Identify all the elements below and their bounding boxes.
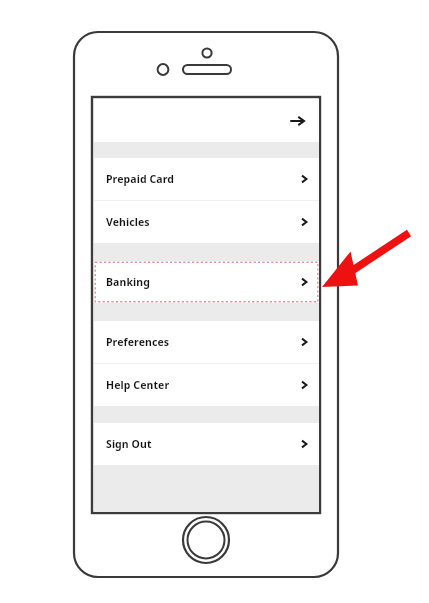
- button[interactable]: Vehicles: [94, 201, 319, 243]
- button[interactable]: Sign Out: [94, 423, 319, 465]
- staticText: Sign Out: [106, 437, 152, 451]
- staticText: Banking: [106, 275, 150, 289]
- staticText: Help Center: [106, 378, 170, 392]
- button[interactable]: Preferences: [94, 321, 319, 363]
- button[interactable]: Prepaid Card: [94, 158, 319, 200]
- button[interactable]: Help Center: [94, 364, 319, 406]
- button[interactable]: Banking: [94, 261, 319, 303]
- staticText: Vehicles: [106, 215, 150, 229]
- staticText: Prepaid Card: [106, 172, 175, 186]
- button[interactable]: Continue: [283, 107, 311, 135]
- staticText: Preferences: [106, 335, 170, 349]
